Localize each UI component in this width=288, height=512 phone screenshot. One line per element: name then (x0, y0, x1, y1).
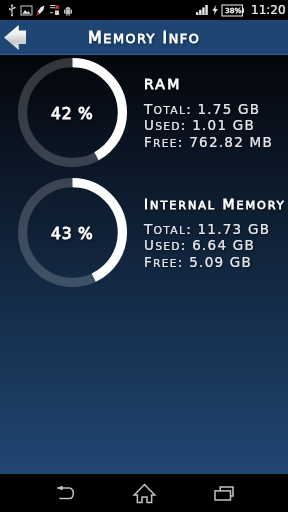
button[interactable]: Home (104, 474, 184, 512)
staticText: 43 % (51, 225, 94, 243)
button[interactable]: Recents (184, 474, 264, 512)
staticText: INTERNAL MEMORY (144, 196, 286, 212)
button[interactable]: 43 % (0, 178, 288, 287)
staticText: 38% (225, 6, 242, 15)
staticText: TOTAL: 11.73 GB USED: 6.64 GB FREE: 5.09… (144, 221, 271, 271)
button[interactable]: Back (24, 474, 104, 512)
staticText: RAM (144, 76, 182, 92)
staticText: 42 % (51, 105, 94, 123)
button[interactable]: 42 % (0, 58, 288, 167)
staticText: MEMORY INFO (88, 28, 201, 47)
staticText: TOTAL: 1.75 GB USED: 1.01 GB FREE: 762.8… (144, 101, 273, 151)
staticText: 11:20 (251, 3, 286, 17)
button[interactable]: Back (2, 20, 28, 54)
